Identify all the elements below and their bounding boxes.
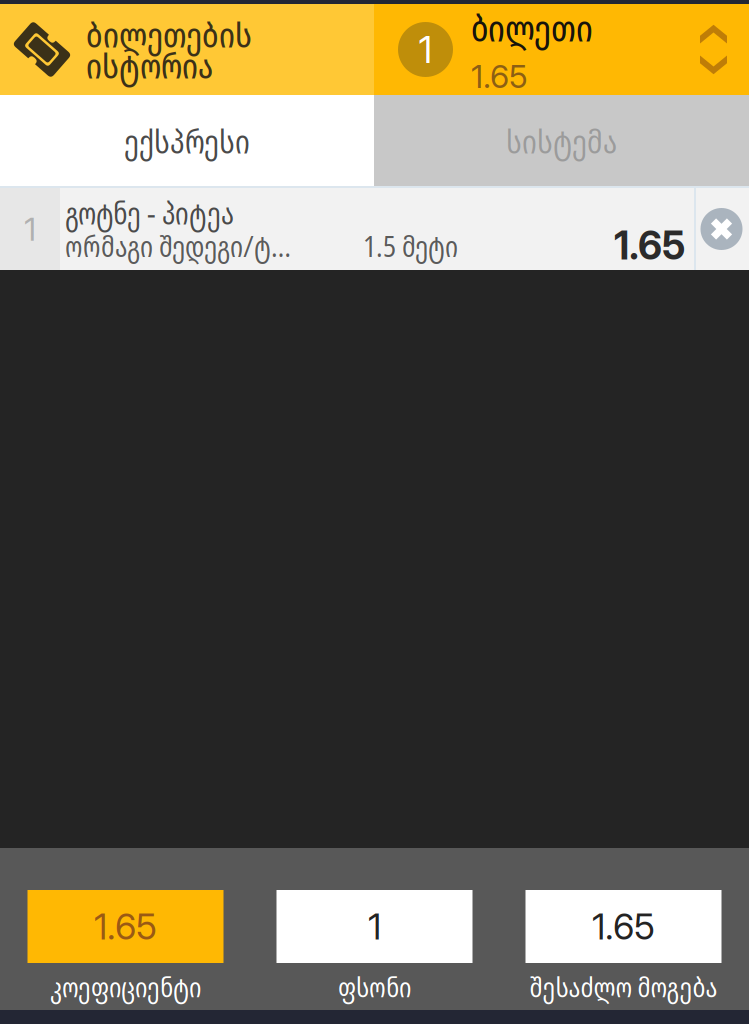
button[interactable]: 1	[250, 848, 499, 1010]
staticText: ორმაგი შედეგი/ტ…	[65, 226, 291, 265]
button[interactable]: Remove selection	[695, 188, 748, 270]
button[interactable]: 1.65	[1, 848, 250, 1010]
staticText: 1.65	[94, 905, 157, 948]
staticText: ისტორია	[86, 41, 213, 88]
staticText: 1.65	[592, 905, 655, 948]
staticText: 1	[418, 27, 432, 72]
staticText: 1.65	[471, 57, 528, 96]
staticText: ბილეთების	[86, 10, 252, 57]
button[interactable]: ექსპრესი	[0, 95, 374, 186]
staticText: კოეფიციენტი	[50, 967, 201, 1006]
staticText: ექსპრესი	[124, 118, 250, 163]
button[interactable]: 1.65	[499, 848, 748, 1010]
staticText: 1.65	[614, 222, 685, 269]
button[interactable]: 1	[374, 4, 749, 95]
button[interactable]: სისტემა	[374, 95, 749, 186]
staticText: გოტნე - პიტეა	[65, 192, 234, 233]
staticText: ფსონი	[338, 967, 411, 1006]
staticText: 1.5 მეტი	[363, 226, 458, 265]
staticText: 1	[24, 210, 36, 248]
staticText: 1	[368, 905, 381, 948]
button[interactable]: ბილეთების	[0, 4, 374, 95]
staticText: შესაძლო მოგება	[529, 967, 717, 1006]
staticText: სისტემა	[506, 118, 617, 163]
staticText: ბილეთი	[471, 3, 593, 52]
